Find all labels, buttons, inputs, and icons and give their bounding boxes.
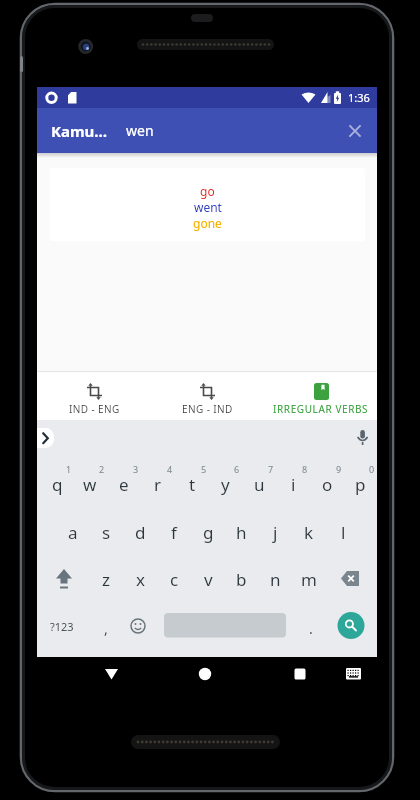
button[interactable]: IRREGULAR VERBS [264, 372, 377, 420]
staticText: 8 [302, 463, 308, 475]
staticText: ?123 [50, 619, 74, 634]
staticText: m [301, 568, 317, 591]
staticText: j [273, 521, 278, 544]
staticText: 2 [99, 463, 105, 475]
staticText: IRREGULAR VERBS [273, 402, 369, 416]
button[interactable]: t [175, 461, 209, 507]
button[interactable]: k [292, 509, 326, 555]
button[interactable]: w [73, 461, 107, 507]
button[interactable]: a [56, 509, 90, 555]
staticText: gone [193, 215, 222, 231]
button[interactable]: n [258, 556, 292, 602]
staticText: e [119, 473, 129, 496]
staticText: v [204, 568, 213, 591]
staticText: b [236, 568, 247, 591]
button[interactable] [283, 657, 316, 690]
staticText: z [102, 568, 110, 591]
button[interactable]: o [310, 461, 344, 507]
staticText: . [309, 619, 313, 638]
staticText: x [136, 568, 145, 591]
staticText: o [322, 473, 333, 496]
staticText: 0 [369, 463, 375, 475]
button[interactable] [338, 657, 370, 690]
button[interactable] [334, 605, 368, 646]
button[interactable]: d [123, 509, 157, 555]
button[interactable]: z [89, 556, 123, 602]
button[interactable]: , [89, 605, 123, 651]
staticText: ENG - IND [182, 402, 233, 416]
button[interactable]: go [50, 168, 365, 241]
button[interactable]: q [40, 461, 74, 507]
staticText: 7 [268, 463, 274, 475]
button[interactable] [331, 555, 369, 601]
staticText: p [355, 473, 366, 496]
button[interactable]: m [292, 556, 326, 602]
staticText: r [154, 473, 162, 496]
button[interactable]: p [343, 461, 377, 507]
button[interactable]: ENG - IND [151, 372, 264, 420]
button[interactable] [188, 657, 221, 690]
button[interactable]: e [107, 461, 141, 507]
button[interactable]: . [294, 605, 328, 651]
button[interactable]: IND - ENG [37, 372, 151, 420]
button[interactable]: l [326, 509, 360, 555]
staticText: 1 [66, 463, 72, 475]
button[interactable]: f [157, 509, 191, 555]
button[interactable] [95, 657, 128, 690]
staticText: f [171, 521, 177, 544]
button[interactable]: y [208, 461, 242, 507]
button[interactable]: b [224, 556, 258, 602]
staticText: w [83, 473, 97, 496]
staticText: IND - ENG [69, 402, 120, 416]
staticText: 3 [133, 463, 139, 475]
staticText: h [236, 521, 247, 544]
button[interactable]: ?123 [45, 603, 79, 649]
staticText: Kamu… [51, 121, 108, 141]
button[interactable]: v [191, 556, 225, 602]
staticText: y [221, 473, 230, 496]
staticText: , [104, 619, 108, 638]
button[interactable]: j [258, 509, 292, 555]
staticText: q [52, 473, 63, 496]
staticText: a [68, 521, 78, 544]
button[interactable] [351, 424, 375, 452]
staticText: went [194, 199, 222, 215]
staticText: l [341, 521, 346, 544]
button[interactable] [343, 119, 367, 143]
button[interactable]: c [157, 556, 191, 602]
button[interactable]: s [89, 509, 123, 555]
staticText: wen [126, 121, 154, 140]
button[interactable]: x [123, 556, 157, 602]
button[interactable]: u [242, 461, 276, 507]
button[interactable]: g [191, 509, 225, 555]
staticText: 6 [234, 463, 240, 475]
staticText: n [270, 568, 281, 591]
staticText: d [135, 521, 146, 544]
staticText: t [189, 473, 196, 496]
button[interactable] [121, 603, 155, 648]
staticText: 5 [201, 463, 207, 475]
staticText: g [203, 521, 214, 544]
staticText: k [304, 521, 314, 544]
button[interactable] [164, 608, 286, 643]
button[interactable] [37, 428, 54, 448]
staticText: 9 [336, 463, 342, 475]
button[interactable]: h [224, 509, 258, 555]
staticText: i [291, 473, 296, 496]
staticText: go [200, 183, 215, 199]
staticText: u [254, 473, 265, 496]
button[interactable]: r [141, 461, 175, 507]
button[interactable] [45, 555, 83, 601]
staticText: 4 [167, 463, 173, 475]
button[interactable]: i [276, 461, 310, 507]
staticText: c [170, 568, 179, 591]
staticText: s [102, 521, 111, 544]
staticText: 1:36 [348, 90, 370, 105]
